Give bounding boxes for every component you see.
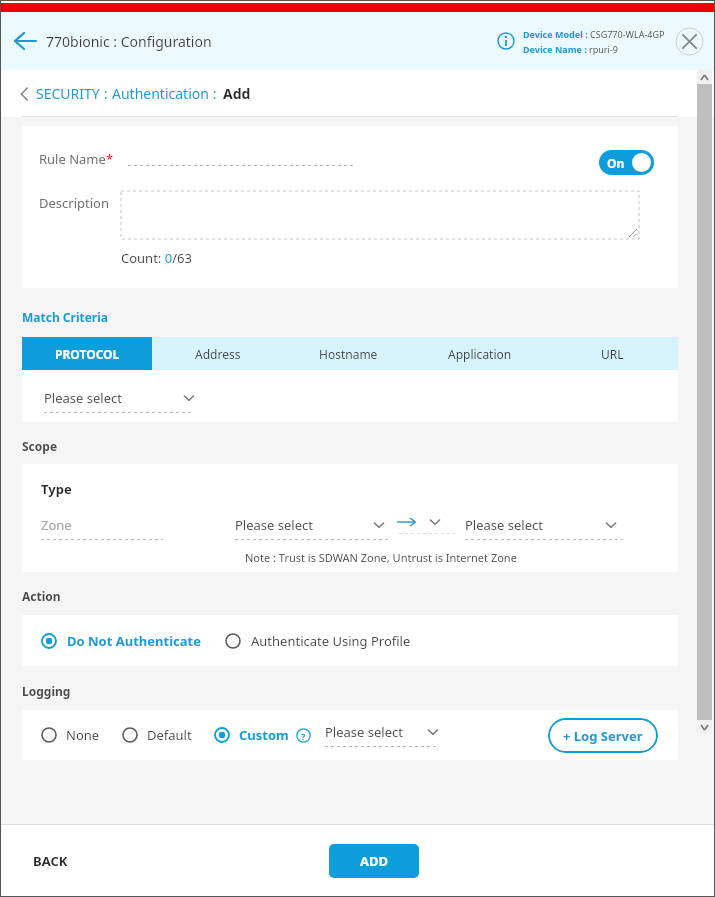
staticText: Please select	[325, 723, 403, 741]
button[interactable]: Authentication	[112, 84, 209, 103]
staticText: :	[100, 84, 112, 103]
staticText: Zone	[41, 516, 72, 534]
staticText: Scope	[22, 438, 58, 454]
button[interactable]: URL	[546, 337, 678, 370]
staticText: 770bionic : Configuration	[46, 32, 212, 51]
staticText: URL	[601, 346, 624, 362]
staticText: Logging	[22, 683, 71, 699]
staticText: Please select	[235, 516, 313, 534]
staticText: Authenticate Using Profile	[251, 632, 411, 650]
button[interactable]: Custom	[214, 726, 289, 744]
staticText: PROTOCOL	[55, 346, 120, 362]
staticText: Device Model : CSG770-WLA-4GP	[523, 28, 665, 40]
staticText: Rule Name	[39, 150, 106, 168]
staticText: Device Name : rpuri-9	[523, 43, 618, 55]
button[interactable]	[121, 191, 639, 239]
staticText: + Log Server	[563, 727, 643, 745]
button[interactable]: SECURITY	[36, 84, 100, 103]
button[interactable]: Please select	[325, 723, 439, 741]
button[interactable]: Default	[122, 726, 192, 744]
staticText: Please select	[44, 389, 122, 407]
button[interactable]: Do Not Authenticate	[41, 632, 201, 650]
staticText: Note : Trust is SDWAN Zone, Untrust is I…	[245, 550, 517, 565]
button[interactable]: Help	[296, 728, 311, 743]
staticText: Custom	[239, 726, 289, 744]
button[interactable]: Back	[8, 24, 42, 58]
staticText: On	[607, 155, 625, 171]
staticText: *	[106, 150, 114, 168]
staticText: Please select	[465, 516, 543, 534]
button[interactable]: Hostname	[283, 337, 414, 370]
button[interactable]: None	[41, 726, 100, 744]
staticText: Add	[223, 84, 251, 103]
staticText: Action	[22, 588, 61, 604]
staticText: Application	[448, 346, 512, 362]
button[interactable]: ADD	[329, 844, 419, 878]
staticText: Hostname	[319, 346, 378, 362]
staticText: Address	[195, 346, 241, 362]
staticText: Type	[41, 480, 72, 498]
button[interactable]: Please select	[465, 516, 623, 540]
button[interactable]: Please select	[235, 516, 391, 540]
button[interactable]: Enable rule, On	[599, 150, 654, 175]
staticText: None	[66, 726, 100, 744]
button[interactable]: Authenticate Using Profile	[225, 632, 411, 650]
button[interactable]: Info	[497, 32, 515, 50]
button[interactable]: Please select	[44, 389, 201, 413]
button[interactable]: Close	[673, 25, 705, 57]
button[interactable]: + Log Server	[548, 718, 658, 753]
staticText: ?	[301, 730, 306, 742]
staticText: Do Not Authenticate	[67, 632, 201, 650]
button[interactable]: Address	[152, 337, 283, 370]
button[interactable]: PROTOCOL	[22, 337, 152, 370]
button[interactable]: Application	[414, 337, 546, 370]
staticText: :	[209, 84, 221, 103]
staticText: ADD	[360, 852, 389, 870]
staticText: Match Criteria	[22, 309, 108, 325]
staticText: Description	[39, 194, 109, 212]
button[interactable]: BACK	[33, 852, 68, 870]
staticText: Default	[147, 726, 192, 744]
staticText: Count: 0/63	[121, 249, 192, 267]
